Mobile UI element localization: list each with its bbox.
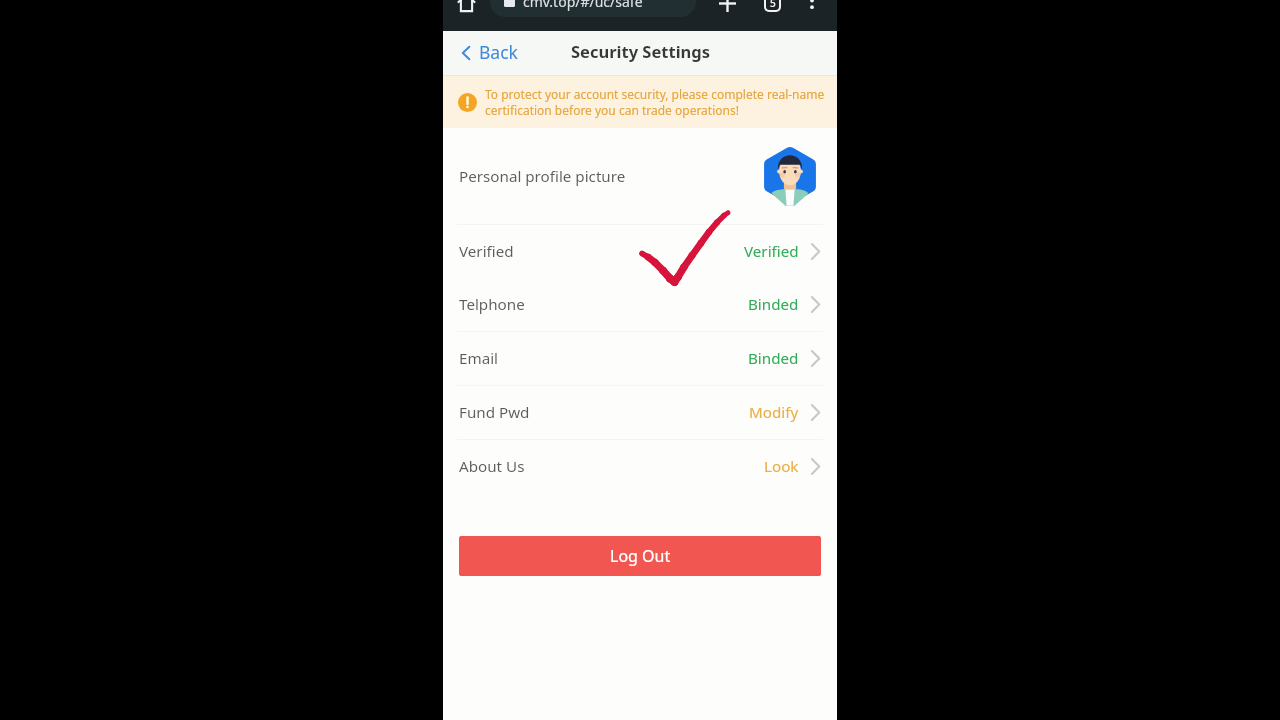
button[interactable]: Verified <box>459 225 820 278</box>
staticText: Look <box>764 456 799 477</box>
staticText: Modify <box>749 402 799 423</box>
staticText: Verified <box>744 241 799 262</box>
staticText: Verified <box>459 241 514 262</box>
button[interactable]: Log Out <box>459 536 821 576</box>
button[interactable]: Email <box>459 332 820 385</box>
staticText: About Us <box>459 456 525 477</box>
button[interactable]: New tab <box>713 0 741 17</box>
staticText: Binded <box>748 294 799 315</box>
staticText: Log Out <box>610 545 671 567</box>
staticText: Fund Pwd <box>459 402 530 423</box>
button[interactable]: More options <box>801 0 823 11</box>
staticText: Telphone <box>459 294 525 315</box>
button[interactable]: Personal profile picture <box>459 128 821 224</box>
button[interactable]: Back <box>462 31 518 76</box>
button[interactable]: cmv.top/#/uc/safe <box>490 0 696 17</box>
staticText: Security Settings <box>571 40 710 62</box>
staticText: Email <box>459 348 499 369</box>
staticText: Personal profile picture <box>459 166 626 187</box>
button[interactable]: Telphone <box>459 278 820 331</box>
staticText: Back <box>479 40 518 64</box>
staticText: To protect your account security, please… <box>485 86 829 118</box>
staticText: 5 <box>770 0 776 10</box>
button[interactable]: Fund Pwd <box>459 386 820 439</box>
button[interactable]: About Us <box>459 440 820 493</box>
button[interactable]: Home <box>452 0 480 17</box>
staticText: Binded <box>748 348 799 369</box>
button[interactable]: Tabs <box>758 0 786 17</box>
staticText: cmv.top/#/uc/safe <box>523 0 643 11</box>
